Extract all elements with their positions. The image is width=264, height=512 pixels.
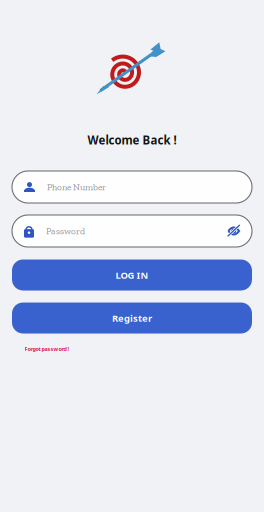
staticText: Welcome Back ! [87,132,176,148]
staticText: Phone Number [47,181,106,193]
button[interactable]: Forgot password ! [24,345,69,353]
button[interactable]: Register [12,302,252,333]
staticText: Register [112,312,152,324]
staticText: Forgot password ! [24,345,69,353]
staticText: LOG IN [115,269,148,281]
button[interactable]: LOG IN [12,259,252,290]
staticText: Password [46,225,85,237]
button[interactable]: Show password [227,225,240,236]
